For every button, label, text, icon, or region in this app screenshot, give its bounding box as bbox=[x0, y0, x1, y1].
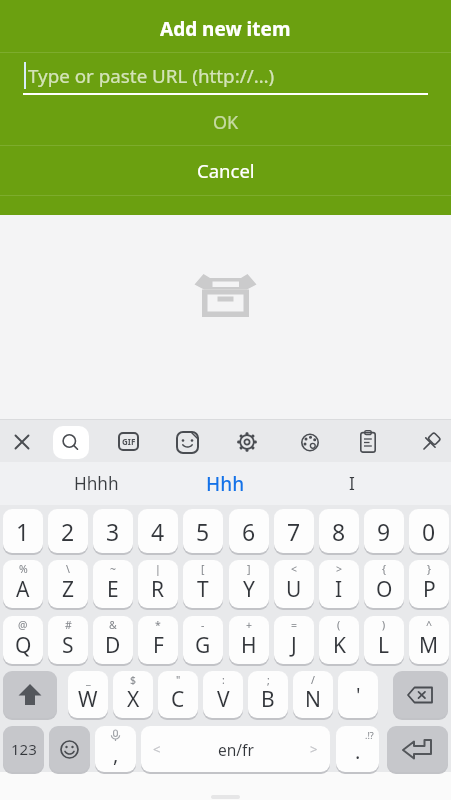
staticText: GIF bbox=[122, 436, 136, 447]
staticText: 8 bbox=[332, 516, 346, 547]
button[interactable]: 6 bbox=[229, 509, 269, 553]
staticText: ] bbox=[247, 562, 251, 576]
button[interactable]: } bbox=[409, 560, 449, 608]
button[interactable] bbox=[53, 426, 89, 459]
button[interactable]: 3 bbox=[93, 509, 133, 553]
button[interactable]: - bbox=[183, 616, 223, 664]
staticText: C bbox=[171, 685, 185, 714]
staticText: ) bbox=[382, 618, 386, 632]
button[interactable]: , bbox=[95, 726, 136, 772]
button[interactable]: Type or paste URL (http://…) bbox=[23, 56, 428, 95]
button[interactable]: ^ bbox=[409, 616, 449, 664]
button[interactable]: 1 bbox=[3, 509, 43, 553]
staticText: R bbox=[151, 575, 165, 604]
button[interactable] bbox=[360, 430, 376, 453]
button[interactable]: $ bbox=[113, 671, 153, 718]
button[interactable] bbox=[417, 430, 443, 456]
staticText: . bbox=[355, 738, 361, 765]
staticText: 1 bbox=[16, 516, 30, 547]
button[interactable]: en/fr bbox=[141, 726, 330, 772]
staticText: + bbox=[246, 618, 253, 632]
button[interactable]: > bbox=[319, 560, 359, 608]
staticText: A bbox=[16, 575, 30, 604]
button[interactable]: " bbox=[158, 671, 198, 718]
button[interactable]: ) bbox=[364, 616, 404, 664]
staticText: $ bbox=[130, 673, 137, 687]
button[interactable]: 4 bbox=[138, 509, 178, 553]
button[interactable]: ' bbox=[338, 671, 378, 718]
staticText: 6 bbox=[242, 516, 256, 547]
button[interactable]: 123 bbox=[3, 726, 44, 772]
button[interactable]: .!? bbox=[336, 726, 379, 772]
button[interactable]: < bbox=[274, 560, 314, 608]
staticText: Q bbox=[15, 631, 32, 660]
button[interactable]: * bbox=[138, 616, 178, 664]
button[interactable]: Hhhh bbox=[40, 462, 152, 505]
button[interactable]: _ bbox=[68, 671, 108, 718]
staticText: ' bbox=[356, 681, 361, 708]
staticText: E bbox=[107, 575, 119, 604]
button[interactable]: % bbox=[3, 560, 43, 608]
button[interactable]: / bbox=[293, 671, 333, 718]
button[interactable]: OK bbox=[0, 100, 451, 145]
button[interactable] bbox=[393, 671, 448, 718]
button[interactable]: 8 bbox=[319, 509, 359, 553]
button[interactable]: = bbox=[274, 616, 314, 664]
staticText: , bbox=[113, 741, 119, 768]
staticText: 2 bbox=[61, 516, 75, 547]
button[interactable]: Cancel bbox=[0, 146, 451, 195]
staticText: B bbox=[261, 685, 275, 714]
staticText: / bbox=[311, 673, 315, 687]
button[interactable] bbox=[176, 431, 199, 454]
staticText: - bbox=[201, 618, 205, 632]
button[interactable]: 5 bbox=[183, 509, 223, 553]
button[interactable]: GIF bbox=[118, 432, 139, 451]
button[interactable]: [ bbox=[183, 560, 223, 608]
button[interactable]: Hhh bbox=[169, 462, 281, 505]
staticText: 0 bbox=[422, 516, 436, 547]
staticText: I bbox=[349, 472, 355, 495]
button[interactable]: \ bbox=[48, 560, 88, 608]
button[interactable]: & bbox=[93, 616, 133, 664]
button[interactable]: | bbox=[138, 560, 178, 608]
button[interactable] bbox=[3, 671, 57, 718]
staticText: < bbox=[153, 740, 161, 758]
staticText: Hhh bbox=[206, 471, 245, 497]
staticText: ( bbox=[337, 618, 341, 632]
button[interactable]: 9 bbox=[364, 509, 404, 553]
button[interactable]: @ bbox=[3, 616, 43, 664]
staticText: H bbox=[241, 631, 257, 660]
button[interactable] bbox=[236, 431, 258, 453]
button[interactable]: ; bbox=[248, 671, 288, 718]
staticText: > bbox=[336, 562, 343, 576]
button[interactable]: 2 bbox=[48, 509, 88, 553]
staticText: S bbox=[62, 631, 74, 660]
staticText: Add new item bbox=[160, 16, 291, 42]
staticText: { bbox=[382, 562, 386, 576]
staticText: # bbox=[65, 618, 72, 632]
staticText: Z bbox=[62, 575, 75, 604]
staticText: P bbox=[423, 575, 436, 604]
staticText: L bbox=[378, 631, 390, 660]
button[interactable]: + bbox=[229, 616, 269, 664]
button[interactable] bbox=[8, 428, 36, 456]
button[interactable]: : bbox=[203, 671, 243, 718]
button[interactable]: ( bbox=[319, 616, 359, 664]
staticText: Y bbox=[243, 575, 255, 604]
button[interactable]: ~ bbox=[93, 560, 133, 608]
button[interactable] bbox=[49, 726, 90, 772]
button[interactable]: I bbox=[296, 462, 408, 505]
button[interactable]: ] bbox=[229, 560, 269, 608]
button[interactable] bbox=[299, 432, 321, 453]
staticText: OK bbox=[213, 110, 239, 135]
staticText: D bbox=[105, 631, 121, 660]
button[interactable]: { bbox=[364, 560, 404, 608]
button[interactable]: 0 bbox=[409, 509, 449, 553]
staticText: Cancel bbox=[197, 158, 255, 183]
staticText: ; bbox=[267, 673, 270, 687]
button[interactable]: # bbox=[48, 616, 88, 664]
button[interactable] bbox=[387, 726, 448, 772]
button[interactable]: 7 bbox=[274, 509, 314, 553]
staticText: : bbox=[222, 673, 225, 687]
staticText: < bbox=[291, 562, 298, 576]
